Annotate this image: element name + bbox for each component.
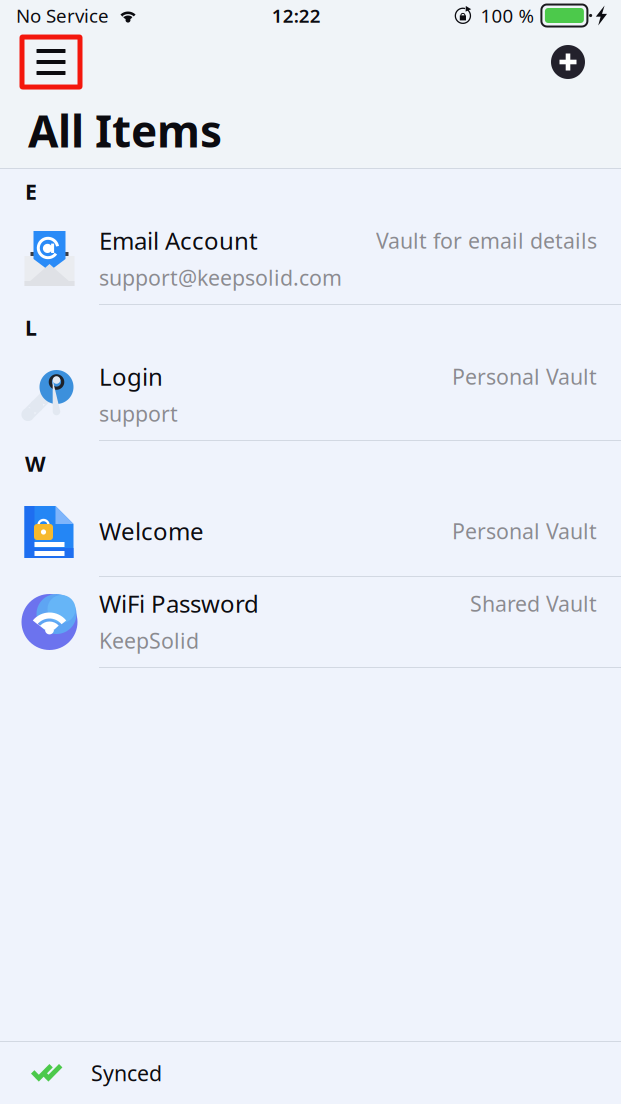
staticText: 100 % — [480, 3, 534, 28]
staticText: E — [25, 177, 37, 206]
staticText: Login — [99, 361, 163, 392]
staticText: Synced — [91, 1059, 162, 1087]
button[interactable]: Email Account — [0, 214, 621, 304]
staticText: No Service — [16, 3, 109, 28]
button[interactable]: Login — [0, 350, 621, 440]
button[interactable]: Add item — [546, 40, 590, 84]
staticText: All Items — [28, 101, 222, 160]
staticText: Welcome — [99, 515, 204, 547]
button[interactable]: Menu — [19, 34, 83, 90]
staticText: support — [99, 399, 178, 428]
staticText: KeepSolid — [99, 626, 199, 655]
staticText: Vault for email details — [376, 226, 597, 255]
staticText: Shared Vault — [470, 589, 597, 618]
staticText: Personal Vault — [452, 517, 597, 545]
staticText: Personal Vault — [452, 362, 597, 391]
staticText: 12:22 — [272, 3, 321, 28]
button[interactable]: WiFi Password — [0, 577, 621, 667]
staticText: W — [25, 449, 46, 478]
button[interactable]: Welcome — [0, 486, 621, 576]
staticText: support@keepsolid.com — [99, 263, 342, 292]
staticText: Email Account — [99, 225, 258, 256]
staticText: WiFi Password — [99, 588, 259, 619]
staticText: L — [25, 313, 37, 342]
